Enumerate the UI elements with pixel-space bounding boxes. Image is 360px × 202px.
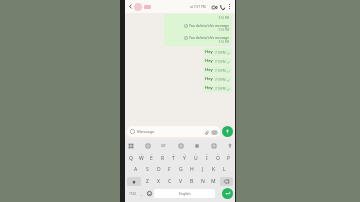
button[interactable]: Toolbar item 2 xyxy=(160,142,167,149)
button[interactable]: 8 xyxy=(201,151,212,163)
staticText: 9 xyxy=(217,152,219,155)
button[interactable]: V xyxy=(175,175,186,187)
button[interactable]: J xyxy=(197,163,208,175)
button[interactable]: 3 xyxy=(146,151,157,163)
staticText: M xyxy=(211,178,216,185)
staticText: . xyxy=(218,191,220,196)
staticText: 3 xyxy=(151,152,153,155)
staticText: Hey xyxy=(205,67,213,73)
staticText: 7:19 PM xyxy=(215,87,226,91)
staticText: 7 xyxy=(195,152,197,155)
staticText: 7:16 PM xyxy=(167,40,229,44)
button[interactable]: Back xyxy=(127,3,134,10)
staticText: 6 xyxy=(184,152,186,155)
button[interactable]: Toolbar item 6 xyxy=(226,142,233,149)
button[interactable]: Comma xyxy=(138,187,145,200)
staticText: Hey xyxy=(205,58,213,64)
button[interactable]: S xyxy=(142,163,153,175)
button[interactable]: Backspace xyxy=(220,177,233,186)
button[interactable]: ?123 xyxy=(127,187,138,200)
button[interactable]: D xyxy=(153,163,164,175)
button[interactable]: Message xyxy=(127,126,220,137)
button[interactable]: L xyxy=(219,163,230,175)
button[interactable]: Enter xyxy=(222,188,233,199)
staticText: 7:19 PM xyxy=(215,69,226,73)
staticText: J xyxy=(202,166,204,173)
button[interactable]: H xyxy=(186,163,197,175)
staticText: A xyxy=(134,166,138,173)
staticText: D xyxy=(157,166,161,173)
staticText: Y xyxy=(183,155,186,162)
button[interactable]: Emoji xyxy=(145,187,153,200)
button[interactable]: 9 xyxy=(212,151,223,163)
button[interactable]: Toolbar item 4 xyxy=(193,142,200,149)
button[interactable]: Toolbar item 0 xyxy=(127,142,134,149)
staticText: 7:16 PM xyxy=(167,16,229,20)
button[interactable]: English xyxy=(154,189,215,198)
staticText: O xyxy=(216,155,220,162)
button[interactable]: 5 xyxy=(168,151,179,163)
staticText: Z xyxy=(146,178,149,185)
button[interactable]: Z xyxy=(142,175,153,187)
button[interactable]: A xyxy=(130,163,142,175)
staticText: Hey xyxy=(205,49,213,55)
staticText: 7:16 PM xyxy=(167,28,229,32)
button[interactable]: N xyxy=(197,175,208,187)
button[interactable]: Attach xyxy=(203,129,209,135)
staticText: E xyxy=(150,155,153,162)
button[interactable]: K xyxy=(208,163,219,175)
staticText: Q xyxy=(129,155,133,162)
staticText: S xyxy=(146,166,149,173)
staticText: 5 xyxy=(173,152,175,155)
button[interactable]: Video call xyxy=(210,3,218,11)
button[interactable]: C xyxy=(164,175,175,187)
staticText: 7:19 PM xyxy=(215,51,226,55)
staticText: F xyxy=(168,166,171,173)
button[interactable]: F xyxy=(164,163,175,175)
staticText: 7:19 PM xyxy=(215,78,226,82)
staticText: X xyxy=(157,178,160,185)
button[interactable]: Voice message xyxy=(222,126,233,137)
staticText: ?123 xyxy=(129,192,136,196)
staticText: V xyxy=(179,178,183,185)
staticText: I xyxy=(206,155,208,162)
button[interactable]: Toolbar item 3 xyxy=(177,142,184,149)
button[interactable]: Toolbar item 5 xyxy=(210,142,217,149)
staticText: H xyxy=(190,166,194,173)
staticText: You deleted this message xyxy=(189,35,229,40)
staticText: R xyxy=(161,155,165,162)
staticText: 7:19 PM xyxy=(215,60,226,64)
staticText: L xyxy=(223,166,226,173)
button[interactable]: Camera xyxy=(211,129,217,135)
staticText: C xyxy=(168,178,172,185)
button[interactable]: 7 xyxy=(190,151,201,163)
staticText: K xyxy=(212,166,216,173)
staticText: , xyxy=(141,191,143,196)
button[interactable]: M xyxy=(208,175,219,187)
button[interactable]: Toolbar item 1 xyxy=(144,142,151,149)
button[interactable]: X xyxy=(153,175,164,187)
staticText: You deleted this message xyxy=(189,23,229,28)
button[interactable]: 2 xyxy=(136,151,146,163)
staticText: W xyxy=(139,155,144,162)
staticText: Hey xyxy=(205,76,213,82)
staticText: N xyxy=(201,178,205,185)
button[interactable]: 6 xyxy=(179,151,190,163)
staticText: Message xyxy=(137,129,203,135)
staticText: 2 xyxy=(141,152,143,155)
button[interactable]: B xyxy=(186,175,197,187)
staticText: English xyxy=(179,191,191,196)
staticText: U xyxy=(194,155,198,162)
staticText: 8 xyxy=(206,152,208,155)
button[interactable]: 0 xyxy=(223,151,234,163)
button[interactable]: 1 xyxy=(126,151,136,163)
button[interactable]: More options xyxy=(226,3,233,10)
button[interactable]: G xyxy=(175,163,186,175)
button[interactable]: 4 xyxy=(157,151,168,163)
staticText: 0 xyxy=(228,152,230,155)
button[interactable]: Call xyxy=(218,3,226,11)
button[interactable]: Shift xyxy=(127,177,141,186)
staticText: G xyxy=(179,166,183,173)
staticText: 4 xyxy=(162,152,164,155)
